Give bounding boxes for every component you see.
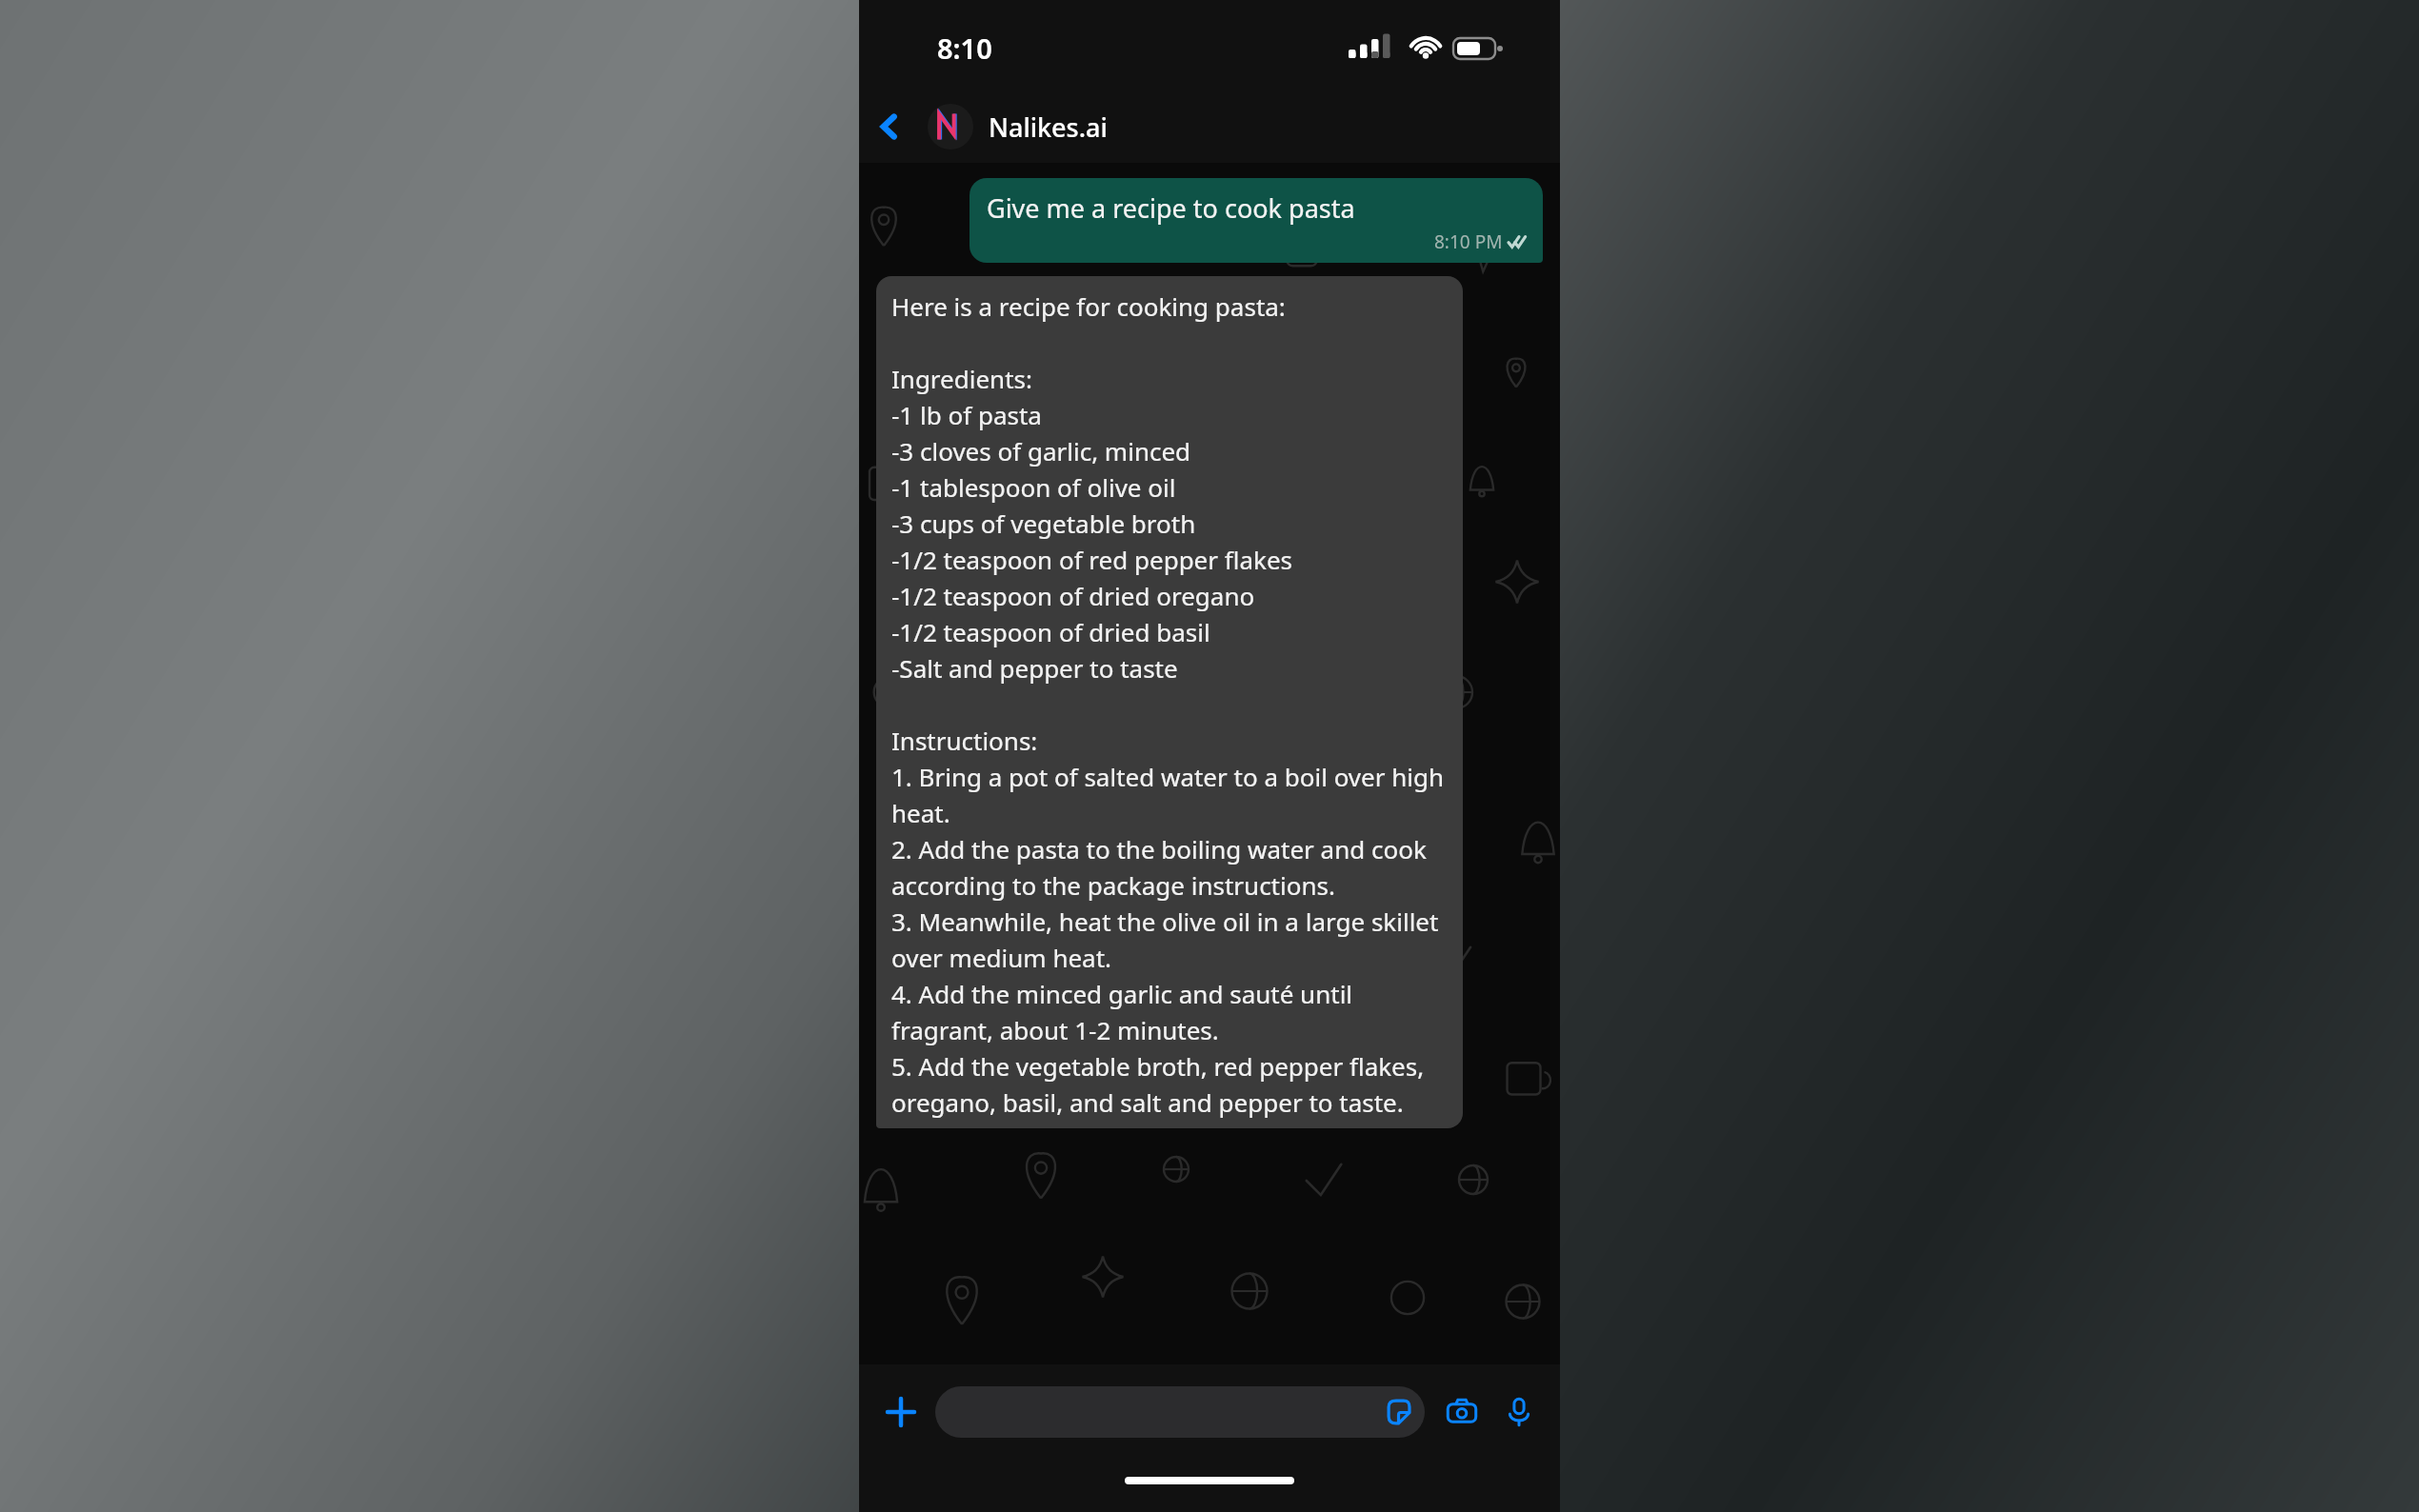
button[interactable]: Stickers	[935, 1386, 1425, 1438]
button[interactable]: Stickers	[1383, 1397, 1413, 1427]
button[interactable]: Camera	[1438, 1388, 1486, 1436]
button[interactable]: Nalikes.ai	[989, 109, 1108, 145]
staticText: 8:10	[937, 30, 992, 67]
staticText: Here is a recipe for cooking pasta: Ingr…	[891, 289, 1449, 1119]
button[interactable]: Voice message	[1495, 1388, 1543, 1436]
button[interactable]: Attach	[876, 1387, 926, 1437]
button[interactable]: Back	[859, 90, 920, 163]
staticText: Give me a recipe to cook pasta	[987, 190, 1355, 226]
button[interactable]: Here is a recipe for cooking pasta: Ingr…	[876, 276, 1463, 1128]
staticText: 8:10 PM	[1434, 229, 1503, 254]
button[interactable]: Give me a recipe to cook pasta	[970, 178, 1543, 263]
